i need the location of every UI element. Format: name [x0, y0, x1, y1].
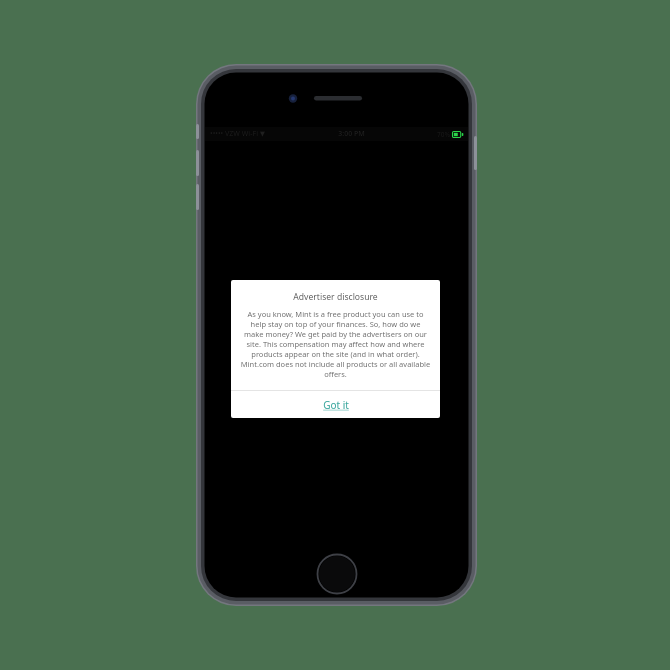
button[interactable]: Got it — [231, 391, 440, 418]
staticText: Advertiser disclosure — [293, 291, 378, 303]
button[interactable]: Home — [316, 553, 358, 595]
staticText: ••••• VZW Wi-Fi ▼ — [210, 129, 266, 139]
staticText: Got it — [323, 398, 349, 412]
staticText: 70% — [437, 130, 450, 139]
staticText: 3:00 PM — [338, 129, 365, 139]
staticText: As you know, Mint is a free product you … — [240, 309, 431, 379]
